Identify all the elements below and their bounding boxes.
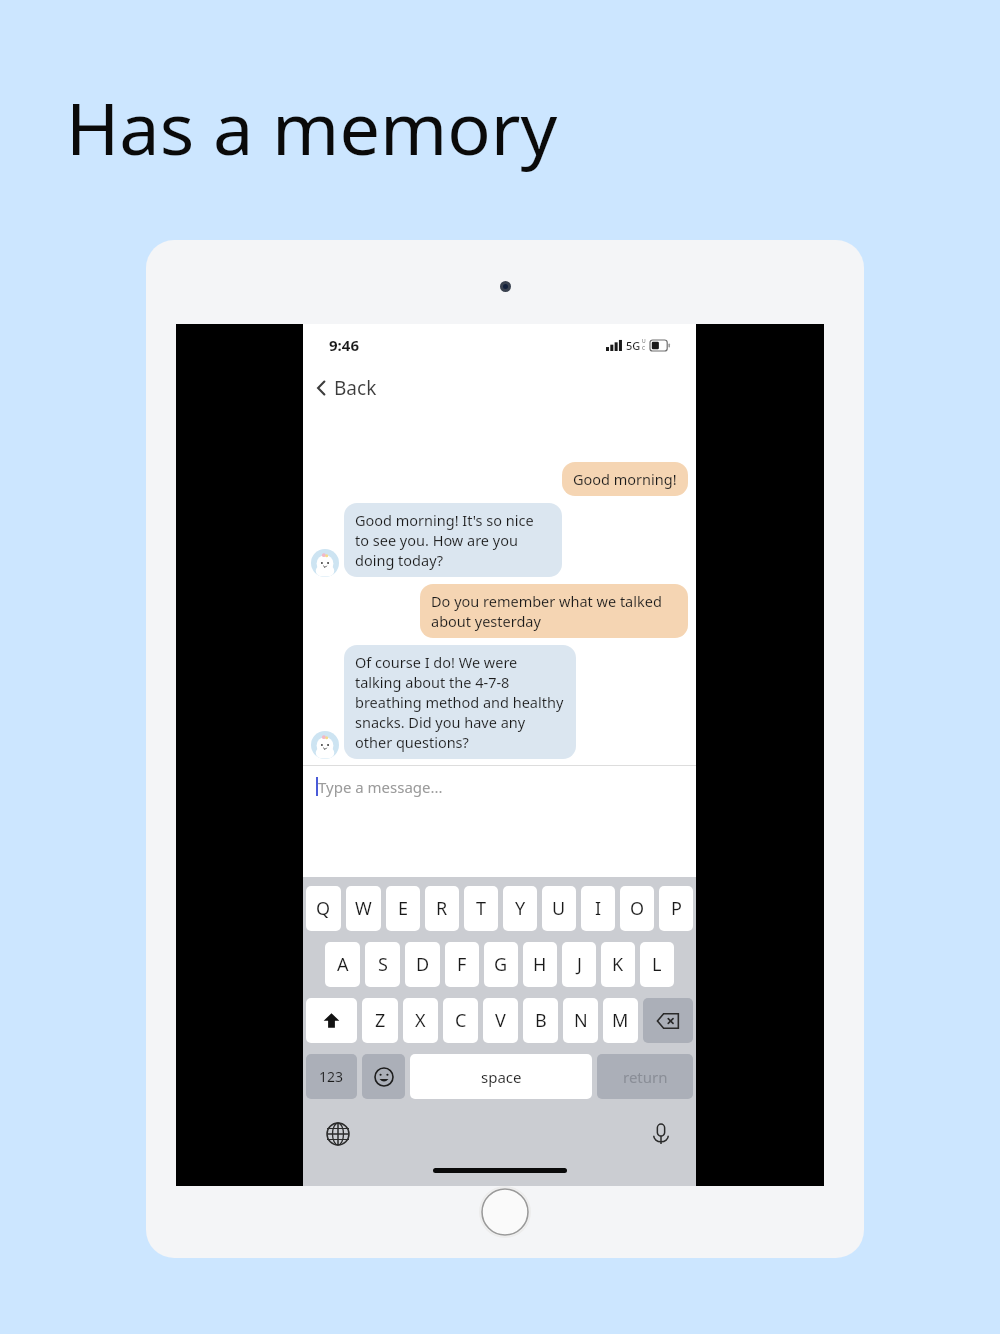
staticText: Type a message... <box>318 777 443 797</box>
staticText: W <box>355 896 372 921</box>
staticText: L <box>652 952 662 977</box>
button[interactable]: S <box>365 942 400 987</box>
staticText: H <box>533 952 547 977</box>
button[interactable]: Of course I do! We were talking about th… <box>344 645 576 759</box>
button[interactable]: Backspace <box>643 998 693 1043</box>
staticText: D <box>416 952 430 977</box>
staticText: F <box>457 952 467 977</box>
button[interactable]: M <box>603 998 638 1043</box>
staticText: 5G <box>626 338 641 353</box>
staticText: T <box>476 896 487 921</box>
staticText: return <box>623 1067 668 1087</box>
button[interactable]: Z <box>362 998 398 1043</box>
staticText: 9:46 <box>329 335 359 355</box>
staticText: space <box>481 1067 522 1087</box>
button[interactable]: Shift <box>306 998 357 1043</box>
button[interactable]: E <box>386 886 420 931</box>
button[interactable]: X <box>403 998 438 1043</box>
button[interactable]: return <box>597 1054 693 1099</box>
button[interactable]: F <box>445 942 479 987</box>
button[interactable]: Back <box>303 366 696 410</box>
staticText: J <box>577 952 582 977</box>
staticText: I <box>595 896 602 921</box>
button[interactable]: Dictate <box>648 1121 674 1147</box>
button[interactable]: A <box>325 942 360 987</box>
button[interactable]: Home <box>479 1186 531 1238</box>
button[interactable]: G <box>484 942 518 987</box>
staticText: G <box>494 952 508 977</box>
staticText: Q <box>316 896 331 921</box>
button[interactable]: space <box>410 1054 592 1099</box>
staticText: E <box>398 896 409 921</box>
button[interactable]: Q <box>306 886 341 931</box>
staticText: C <box>642 345 646 352</box>
button[interactable]: T <box>464 886 498 931</box>
staticText: Back <box>334 375 377 401</box>
staticText: V <box>495 1008 506 1033</box>
button[interactable]: O <box>620 886 654 931</box>
staticText: C <box>455 1008 467 1033</box>
button[interactable]: J <box>562 942 596 987</box>
button[interactable]: 123 <box>306 1054 357 1099</box>
staticText: S <box>378 952 388 977</box>
button[interactable]: Do you remember what we talked about yes… <box>420 584 688 638</box>
button[interactable]: D <box>405 942 440 987</box>
staticText: B <box>535 1008 547 1033</box>
button[interactable]: Type a message... <box>316 777 696 797</box>
button[interactable]: C <box>443 998 478 1043</box>
staticText: U <box>642 338 646 345</box>
staticText: M <box>612 1008 629 1033</box>
button[interactable]: U <box>542 886 576 931</box>
button[interactable]: Y <box>503 886 537 931</box>
staticText: P <box>671 896 682 921</box>
staticText: Z <box>375 1008 386 1033</box>
staticText: X <box>415 1008 426 1033</box>
staticText: Has a memory <box>66 78 558 176</box>
button[interactable]: Good morning! It's so nice to see you. H… <box>344 503 562 577</box>
staticText: R <box>436 896 448 921</box>
staticText: Do you remember what we talked about yes… <box>431 591 677 631</box>
button[interactable]: Emoji <box>362 1054 405 1099</box>
staticText: Y <box>515 896 526 921</box>
staticText: Of course I do! We were talking about th… <box>355 652 565 752</box>
button[interactable]: B <box>523 998 558 1043</box>
button[interactable]: I <box>581 886 615 931</box>
button[interactable]: L <box>640 942 674 987</box>
button[interactable]: Good morning! <box>562 462 688 496</box>
staticText: Good morning! <box>573 469 677 489</box>
button[interactable]: V <box>483 998 518 1043</box>
staticText: K <box>612 952 624 977</box>
button[interactable]: Globe <box>325 1121 351 1147</box>
button[interactable]: K <box>601 942 635 987</box>
staticText: N <box>574 1008 588 1033</box>
staticText: O <box>630 896 645 921</box>
button[interactable]: W <box>346 886 381 931</box>
button[interactable]: N <box>563 998 598 1043</box>
button[interactable]: R <box>425 886 459 931</box>
staticText: U <box>552 896 566 921</box>
staticText: Good morning! It's so nice to see you. H… <box>355 510 551 570</box>
button[interactable]: P <box>659 886 693 931</box>
staticText: A <box>337 952 349 977</box>
staticText: 123 <box>319 1067 344 1086</box>
button[interactable]: H <box>523 942 557 987</box>
